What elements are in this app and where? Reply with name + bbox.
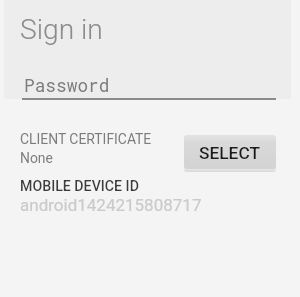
staticText: SELECT <box>199 143 260 163</box>
staticText: CLIENT CERTIFICATE <box>20 131 152 147</box>
staticText: Password <box>24 73 110 96</box>
staticText: android1424215808717 <box>20 195 202 215</box>
staticText: Sign in <box>20 13 103 46</box>
staticText: MOBILE DEVICE ID <box>20 178 139 195</box>
button[interactable]: SELECT <box>184 135 276 169</box>
staticText: None <box>20 150 53 166</box>
